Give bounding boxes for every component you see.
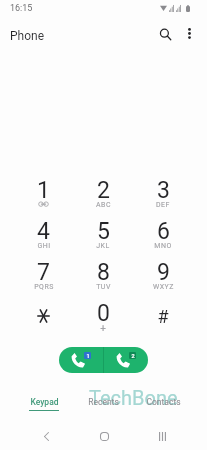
button[interactable]: Recents	[73, 397, 133, 417]
button[interactable]: More options	[176, 20, 202, 46]
button[interactable]: Dial 7	[14, 253, 73, 294]
button[interactable]: Dial 4	[14, 212, 73, 253]
button[interactable]: Dial 2	[73, 171, 133, 212]
button[interactable]: Call with SIM 1	[59, 347, 103, 373]
staticText: ABC	[96, 201, 111, 209]
staticText: Keypad	[30, 397, 59, 407]
staticText: 7	[37, 259, 50, 286]
button[interactable]: Dial 0	[73, 294, 133, 335]
button[interactable]: Keypad	[14, 397, 73, 417]
button[interactable]: Dial *	[14, 294, 73, 335]
staticText: TechBone	[89, 386, 178, 409]
staticText: 6	[157, 218, 170, 245]
staticText: Recents	[88, 397, 119, 407]
button[interactable]: Dial 9	[133, 253, 193, 294]
staticText: Contacts	[146, 397, 181, 407]
button[interactable]: Dial #	[133, 294, 193, 335]
staticText: DEF	[156, 201, 170, 209]
staticText: TUV	[96, 283, 111, 291]
staticText: +	[100, 323, 106, 335]
staticText: 8	[97, 259, 110, 286]
staticText: 16:15	[10, 3, 33, 14]
staticText: 1	[86, 353, 90, 359]
staticText: 3	[157, 177, 170, 204]
button[interactable]: Call with SIM 2	[104, 347, 148, 373]
staticText: PQRS	[34, 283, 54, 291]
button[interactable]: Recent apps	[144, 422, 180, 450]
button[interactable]: Dial 5	[73, 212, 133, 253]
staticText: 2	[97, 177, 110, 204]
staticText: 9	[157, 259, 170, 286]
button[interactable]: Dial 3	[133, 171, 193, 212]
button[interactable]: Dial 8	[73, 253, 133, 294]
staticText: 0	[97, 300, 110, 327]
button[interactable]: Contacts	[133, 397, 193, 417]
staticText: WXYZ	[153, 283, 174, 291]
staticText: JKL	[96, 242, 110, 250]
staticText: MNO	[154, 242, 172, 250]
button[interactable]: Home	[86, 422, 122, 450]
staticText: 4	[37, 218, 50, 245]
staticText: 5	[97, 218, 110, 245]
staticText: #	[157, 306, 169, 327]
staticText: Phone	[10, 29, 45, 43]
staticText: GHI	[37, 242, 51, 250]
button[interactable]: Back	[28, 422, 64, 450]
staticText: 2	[131, 353, 135, 359]
staticText: 1	[37, 177, 50, 204]
button[interactable]: Search	[152, 21, 178, 47]
button[interactable]: Dial 1	[14, 171, 73, 212]
button[interactable]: Dial 6	[133, 212, 193, 253]
